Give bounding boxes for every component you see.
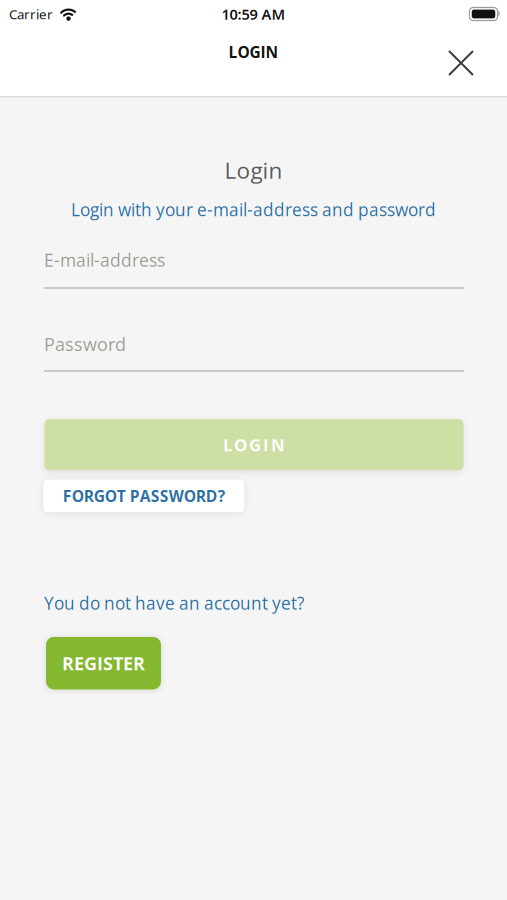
staticText: L O G I N bbox=[223, 433, 285, 456]
button[interactable]: Close bbox=[439, 41, 483, 85]
button[interactable]: LOGIN bbox=[44, 419, 463, 470]
staticText: Carrier bbox=[9, 5, 53, 23]
staticText: Password bbox=[44, 332, 126, 356]
staticText: LOGIN bbox=[228, 41, 278, 63]
button[interactable]: FORGOT PASSWORD? bbox=[43, 480, 244, 512]
textField[interactable]: E-mail-address bbox=[44, 248, 463, 272]
staticText: 10:59 AM bbox=[221, 4, 285, 24]
secureTextField[interactable]: Password bbox=[44, 332, 463, 356]
staticText: You do not have an account yet? bbox=[44, 591, 304, 615]
staticText: FORGOT PASSWORD? bbox=[63, 485, 225, 507]
staticText: REGISTER bbox=[62, 651, 145, 675]
button[interactable]: REGISTER bbox=[46, 637, 161, 689]
staticText: Login bbox=[224, 155, 282, 185]
staticText: E-mail-address bbox=[44, 248, 165, 272]
staticText: Login with your e-mail-address and passw… bbox=[71, 198, 436, 221]
